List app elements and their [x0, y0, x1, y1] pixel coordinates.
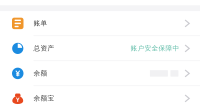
staticText: 账单	[33, 19, 47, 27]
staticText: 账户安全保障中	[130, 44, 179, 52]
button[interactable]: 余额	[0, 61, 200, 86]
staticText: 余额宝	[33, 94, 54, 102]
staticText: 余额	[33, 69, 47, 77]
button[interactable]: 余额宝	[0, 86, 200, 111]
button[interactable]: 总资产	[0, 36, 200, 61]
staticText: 总资产	[33, 44, 54, 52]
button[interactable]: 账单	[0, 11, 200, 36]
